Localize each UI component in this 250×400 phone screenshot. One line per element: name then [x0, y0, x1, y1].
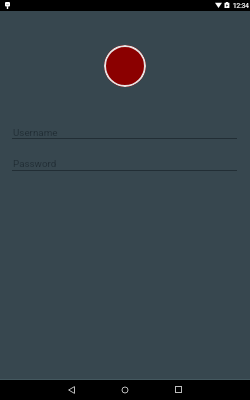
staticText: Username: [13, 127, 58, 138]
button[interactable]: Back: [50, 379, 93, 400]
staticText: 12:34: [233, 2, 249, 10]
button[interactable]: Profile photo: [104, 45, 146, 87]
staticText: Password: [13, 158, 57, 169]
button[interactable]: Home: [103, 379, 146, 400]
button[interactable]: Username: [0, 127, 250, 140]
button[interactable]: Recents: [157, 379, 200, 400]
button[interactable]: Password: [0, 158, 250, 172]
